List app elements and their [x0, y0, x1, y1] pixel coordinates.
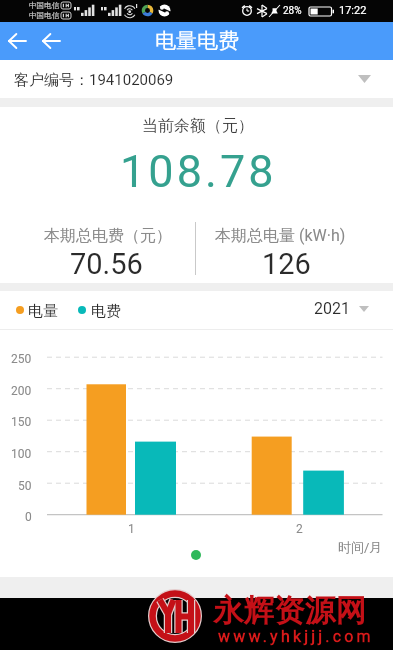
- staticText: 本期总电量 (kW·h): [215, 226, 346, 246]
- staticText: 70.56: [70, 247, 143, 281]
- staticText: 150: [11, 415, 32, 429]
- staticText: 客户编号：1941020069: [14, 71, 174, 90]
- staticText: 50: [18, 479, 32, 493]
- button[interactable]: Back: [0, 22, 34, 60]
- staticText: 126: [262, 247, 311, 281]
- staticText: 电费: [91, 302, 121, 321]
- staticText: 0: [25, 510, 32, 524]
- staticText: 电量: [28, 302, 58, 321]
- staticText: 250: [11, 352, 32, 366]
- staticText: 永辉资源网: [213, 592, 366, 631]
- staticText: 2: [296, 522, 303, 536]
- staticText: 电量电费: [155, 28, 239, 54]
- staticText: 108.78: [120, 145, 277, 198]
- staticText: www.yhkjjj.com: [218, 627, 374, 646]
- button[interactable]: 客户编号：1941020069: [0, 60, 393, 98]
- staticText: 1: [128, 522, 135, 536]
- staticText: 200: [11, 384, 32, 398]
- staticText: 100: [11, 447, 32, 461]
- staticText: 中国电信: [29, 1, 60, 11]
- staticText: 本期总电费（元）: [44, 226, 172, 246]
- staticText: 当前余额（元）: [142, 116, 254, 136]
- staticText: 28%: [283, 5, 302, 17]
- button[interactable]: Close: [34, 22, 68, 60]
- staticText: 17:22: [339, 4, 367, 17]
- staticText: 时间/月: [338, 539, 383, 555]
- button[interactable]: 2021: [314, 299, 369, 318]
- staticText: 2021: [314, 299, 350, 318]
- staticText: 中国电信: [29, 11, 60, 21]
